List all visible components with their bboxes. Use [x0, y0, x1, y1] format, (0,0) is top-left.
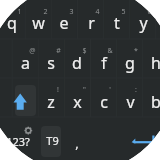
button[interactable] [104, 0, 130, 39]
button[interactable]: Shift [15, 85, 36, 116]
staticText: e [59, 12, 69, 34]
staticText: w [32, 12, 45, 34]
staticText: d [72, 52, 82, 74]
staticText: 123? [6, 134, 30, 149]
staticText: $ [82, 46, 87, 56]
button[interactable] [117, 78, 143, 117]
staticText: 5 [121, 7, 126, 17]
staticText: a [21, 52, 30, 74]
button[interactable]: Enter [128, 120, 160, 158]
button[interactable] [51, 0, 77, 39]
button[interactable] [25, 0, 51, 39]
button[interactable] [130, 0, 156, 39]
staticText: : [135, 85, 137, 95]
button[interactable] [143, 78, 160, 117]
button[interactable] [64, 39, 90, 78]
staticText: t [114, 12, 120, 34]
staticText: , [75, 134, 79, 152]
staticText: q [7, 12, 17, 34]
staticText: b [151, 91, 160, 113]
button[interactable] [41, 126, 61, 157]
staticText: " [83, 85, 86, 95]
staticText: # [56, 46, 61, 56]
staticText: r [88, 12, 95, 34]
button[interactable] [91, 78, 117, 117]
staticText: * [134, 46, 138, 56]
button[interactable] [12, 39, 38, 78]
staticText: 2 [43, 7, 48, 17]
button[interactable] [64, 120, 90, 158]
staticText: 4 [95, 7, 100, 17]
button[interactable] [0, 0, 25, 39]
button[interactable] [77, 0, 103, 39]
button[interactable] [117, 39, 143, 78]
staticText: z [47, 91, 55, 113]
staticText: x [73, 91, 82, 113]
staticText: c [100, 91, 108, 113]
staticText: ! [57, 85, 59, 95]
staticText: v [126, 91, 135, 113]
staticText: & [107, 46, 113, 56]
staticText: h [151, 52, 160, 74]
staticText: f [101, 52, 107, 74]
staticText: 1 [17, 7, 22, 17]
button[interactable] [38, 39, 64, 78]
staticText: @ [29, 46, 36, 56]
staticText: ' [109, 85, 111, 95]
button[interactable] [91, 39, 117, 78]
staticText: s [47, 52, 55, 74]
button[interactable] [0, 117, 40, 160]
staticText: 6 [147, 7, 152, 17]
staticText: 3 [69, 7, 74, 17]
staticText: T9 [46, 133, 59, 148]
button[interactable] [38, 78, 64, 117]
button[interactable] [143, 39, 160, 78]
button[interactable] [64, 78, 90, 117]
staticText: g [125, 52, 135, 74]
staticText: y [139, 12, 148, 34]
